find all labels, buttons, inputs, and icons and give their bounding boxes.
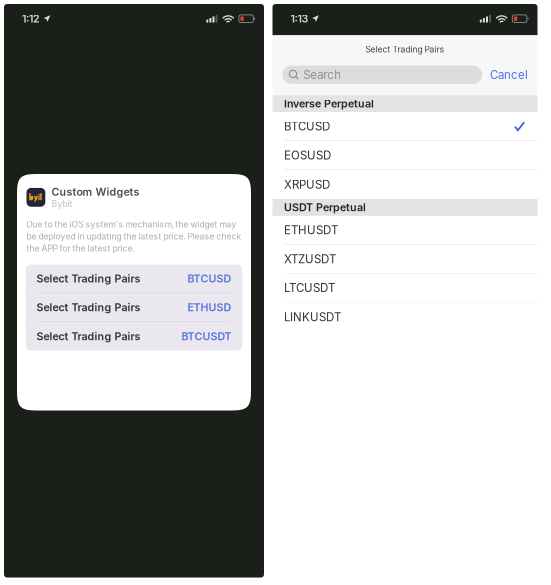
staticText: LTCUSDT	[284, 281, 335, 295]
staticText: Select Trading Pairs	[37, 272, 141, 285]
staticText: LINKUSDT	[284, 310, 341, 324]
button[interactable]: Cancel	[490, 68, 528, 82]
staticText: BTCUSD	[187, 272, 231, 285]
button[interactable]: XRPUSD	[272, 170, 537, 199]
staticText: Select Trading Pairs	[37, 301, 141, 314]
button[interactable]: EOSUSD	[272, 141, 537, 170]
staticText: Custom Widgets	[52, 185, 140, 198]
staticText: Bybit	[52, 199, 73, 209]
staticText: ETHUSDT	[284, 223, 338, 237]
button[interactable]: LINKUSDT	[272, 303, 537, 331]
staticText: ETHUSD	[187, 301, 231, 314]
staticText: 1:12	[22, 12, 40, 25]
button[interactable]: Select Trading Pairs	[26, 293, 242, 322]
staticText: BTCUSD	[284, 119, 330, 133]
button[interactable]: XTZUSDT	[272, 245, 537, 274]
button[interactable]: BTCUSD	[272, 112, 537, 141]
staticText: Due to the iOS system's mechanism, the w…	[26, 219, 241, 253]
staticText: Search	[303, 68, 341, 82]
staticText: USDT Perpetual	[284, 201, 366, 214]
staticText: Select Trading Pairs	[365, 44, 444, 55]
staticText: XTZUSDT	[284, 252, 336, 266]
staticText: Select Trading Pairs	[37, 330, 141, 343]
staticText: Inverse Perpetual	[284, 97, 374, 110]
staticText: XRPUSD	[284, 177, 330, 191]
staticText: 1:13	[290, 12, 308, 25]
staticText: EOSUSD	[284, 148, 331, 162]
button[interactable]: Select Trading Pairs	[26, 264, 242, 293]
button[interactable]: ETHUSDT	[272, 216, 537, 245]
staticText: Cancel	[490, 68, 528, 82]
button[interactable]: Select Trading Pairs	[26, 322, 242, 351]
staticText: BTCUSDT	[181, 330, 231, 343]
button[interactable]: LTCUSDT	[272, 274, 537, 303]
